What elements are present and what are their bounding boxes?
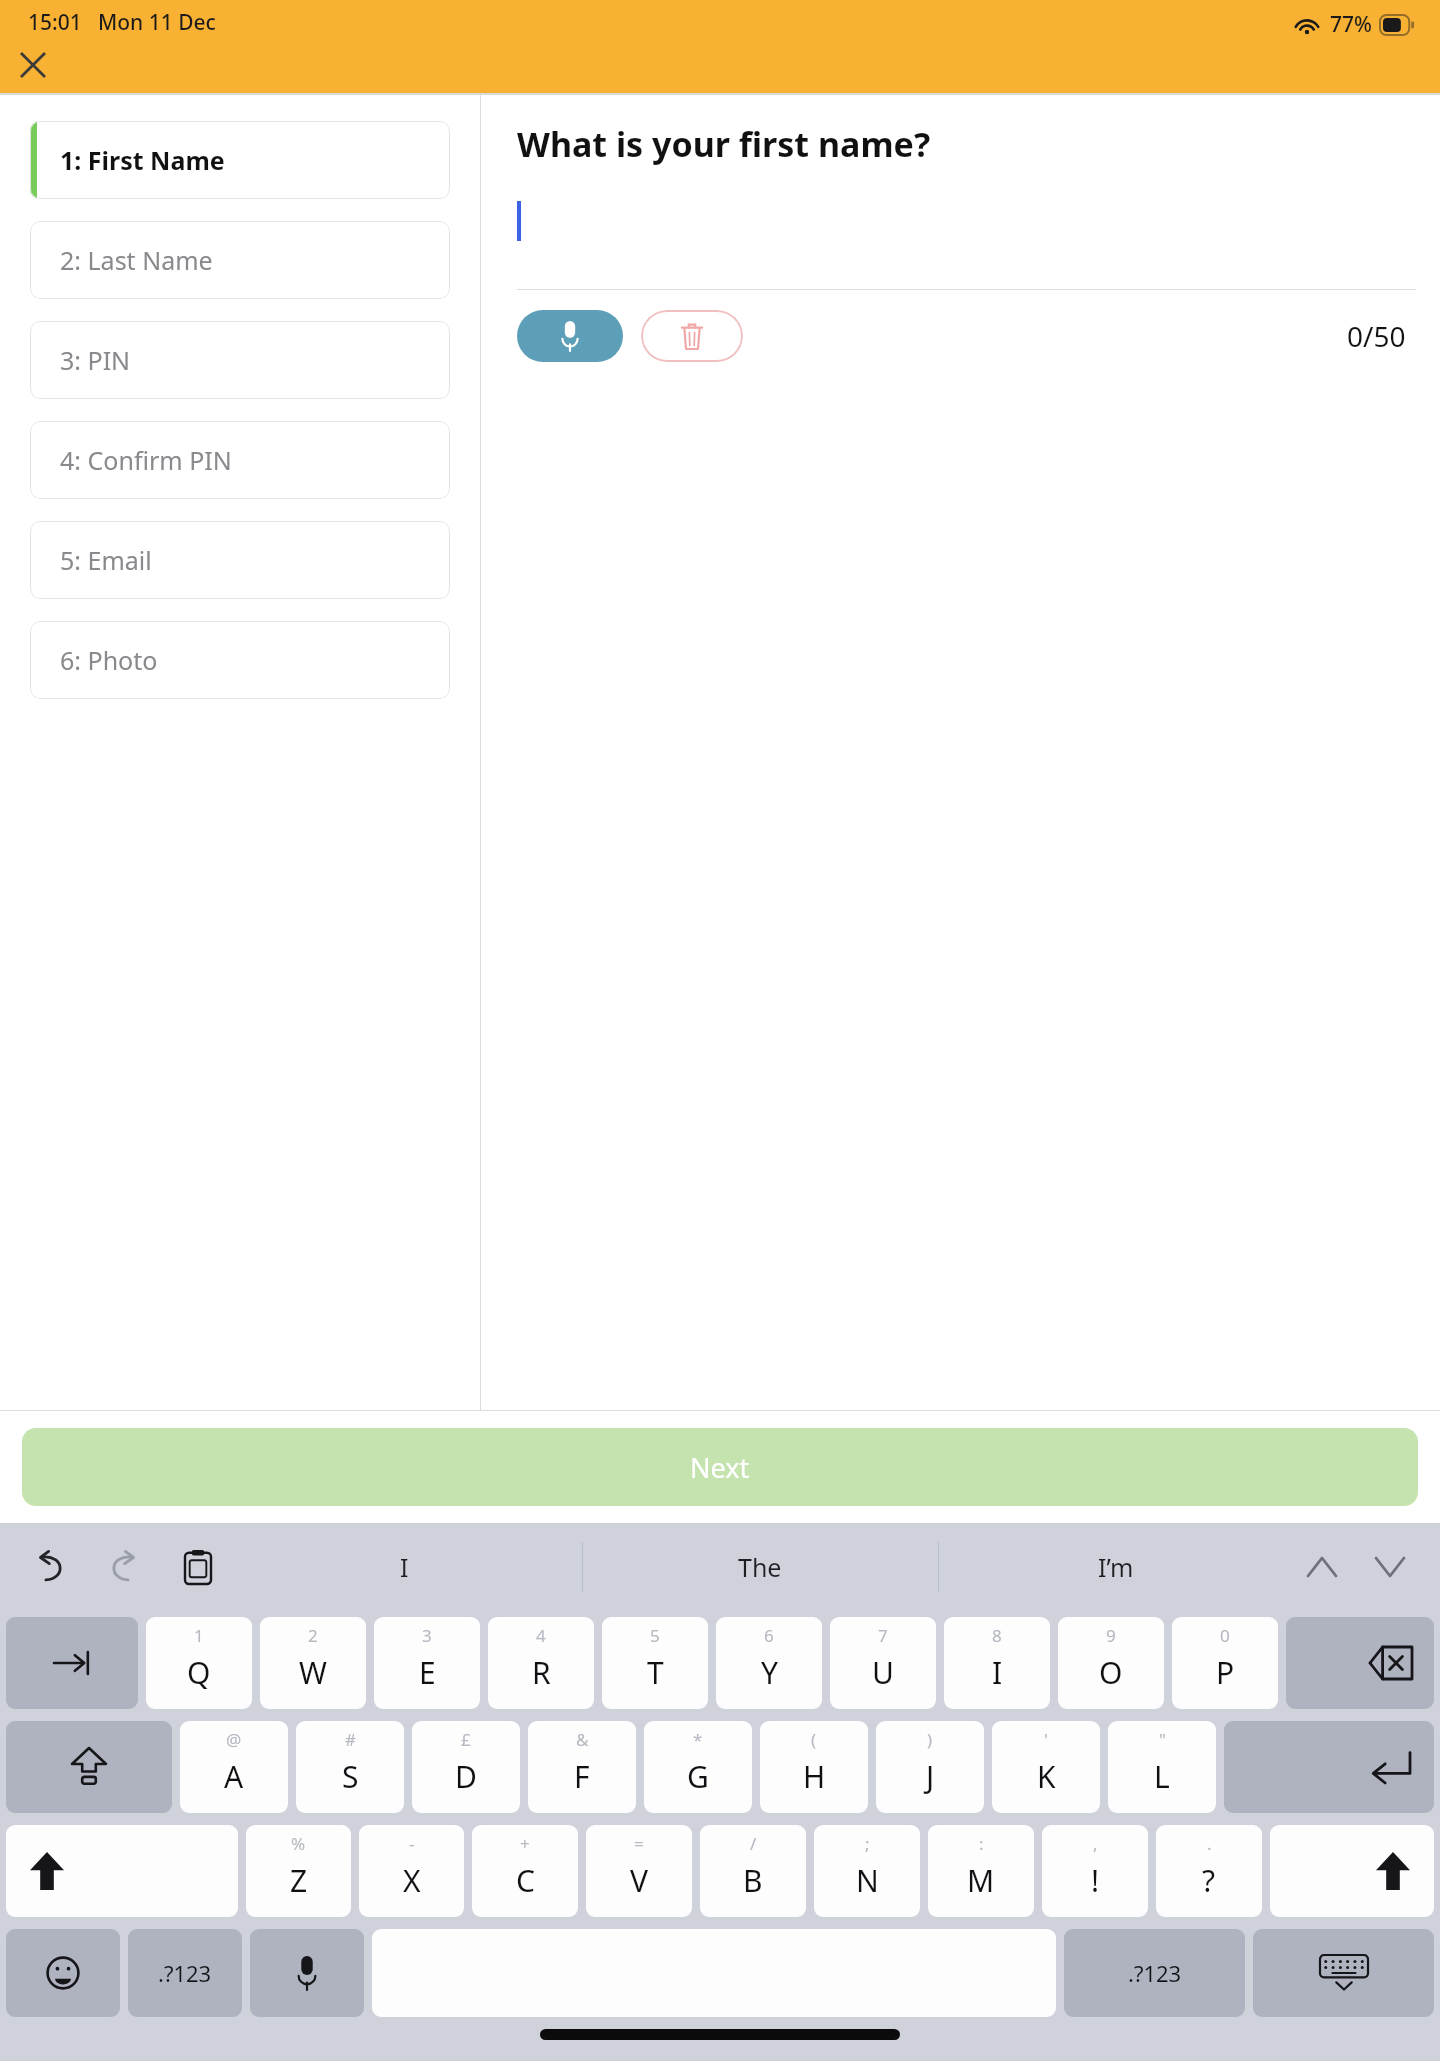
- button[interactable]: :: [928, 1825, 1034, 1917]
- button[interactable]: 8: [944, 1617, 1050, 1709]
- button[interactable]: 1: First Name: [30, 121, 450, 199]
- staticText: L: [1154, 1756, 1170, 1797]
- button[interactable]: Undo: [22, 1539, 78, 1595]
- button[interactable]: Hide keyboard: [1253, 1929, 1434, 2017]
- button[interactable]: Emoji: [6, 1929, 120, 2017]
- button[interactable]: .?123: [1064, 1929, 1245, 2017]
- button[interactable]: ): [876, 1721, 984, 1813]
- button[interactable]: ": [1108, 1721, 1216, 1813]
- staticText: D: [455, 1756, 477, 1797]
- staticText: &: [576, 1728, 589, 1751]
- button[interactable]: 6: [716, 1617, 822, 1709]
- button[interactable]: @: [180, 1721, 288, 1813]
- staticText: -: [409, 1832, 415, 1855]
- staticText: ;: [865, 1832, 870, 1855]
- button[interactable]: #: [296, 1721, 404, 1813]
- button[interactable]: Caps lock: [6, 1721, 172, 1813]
- button[interactable]: 0: [1172, 1617, 1278, 1709]
- button[interactable]: Redo: [96, 1539, 152, 1595]
- button[interactable]: Tab: [6, 1617, 138, 1709]
- staticText: .: [1207, 1832, 1212, 1855]
- button[interactable]: Shift: [1270, 1825, 1434, 1917]
- button[interactable]: 6: Photo: [30, 621, 450, 699]
- button[interactable]: The: [582, 1523, 938, 1611]
- button[interactable]: Delete recording: [641, 310, 743, 362]
- staticText: 8: [992, 1624, 1002, 1647]
- staticText: I: [400, 1550, 409, 1584]
- staticText: O: [1099, 1652, 1123, 1693]
- button[interactable]: =: [586, 1825, 692, 1917]
- button[interactable]: 9: [1058, 1617, 1164, 1709]
- button[interactable]: Record audio: [517, 310, 623, 362]
- button[interactable]: 4: [488, 1617, 594, 1709]
- button[interactable]: 2: Last Name: [30, 221, 450, 299]
- button[interactable]: 2: [260, 1617, 366, 1709]
- button[interactable]: *: [644, 1721, 752, 1813]
- button[interactable]: Backspace: [1286, 1617, 1434, 1709]
- staticText: Z: [290, 1860, 308, 1901]
- staticText: /: [750, 1832, 757, 1855]
- staticText: 3: PIN: [60, 343, 131, 377]
- staticText: .?123: [158, 1958, 212, 1988]
- staticText: 6: Photo: [60, 643, 158, 677]
- button[interactable]: 7: [830, 1617, 936, 1709]
- staticText: Y: [761, 1652, 778, 1693]
- button[interactable]: Next field: [1362, 1539, 1418, 1595]
- staticText: !: [1091, 1860, 1100, 1901]
- button[interactable]: 3: [374, 1617, 480, 1709]
- button[interactable]: I: [226, 1523, 582, 1611]
- button[interactable]: .: [1156, 1825, 1262, 1917]
- staticText: C: [516, 1860, 535, 1901]
- staticText: R: [532, 1652, 551, 1693]
- staticText: 7: [878, 1624, 888, 1647]
- button[interactable]: ;: [814, 1825, 920, 1917]
- button[interactable]: 1: [146, 1617, 252, 1709]
- staticText: I’m: [1098, 1550, 1134, 1584]
- button[interactable]: 4: Confirm PIN: [30, 421, 450, 499]
- button[interactable]: 5: Email: [30, 521, 450, 599]
- button[interactable]: ,: [1042, 1825, 1148, 1917]
- button[interactable]: 3: PIN: [30, 321, 450, 399]
- button[interactable]: Close: [10, 42, 56, 88]
- button[interactable]: 5: [602, 1617, 708, 1709]
- staticText: P: [1216, 1652, 1235, 1693]
- button[interactable]: %: [246, 1825, 351, 1917]
- button[interactable]: Next: [22, 1428, 1418, 1506]
- staticText: =: [634, 1832, 644, 1855]
- button[interactable]: Clipboard: [170, 1539, 226, 1595]
- button[interactable]: £: [412, 1721, 520, 1813]
- staticText: 4: Confirm PIN: [60, 443, 232, 477]
- button[interactable]: /: [700, 1825, 806, 1917]
- staticText: F: [574, 1756, 590, 1797]
- staticText: B: [743, 1860, 763, 1901]
- button[interactable]: Shift: [6, 1825, 238, 1917]
- staticText: The: [738, 1550, 782, 1584]
- staticText: *: [693, 1728, 703, 1751]
- button[interactable]: &: [528, 1721, 636, 1813]
- button[interactable]: (: [760, 1721, 868, 1813]
- button[interactable]: +: [472, 1825, 578, 1917]
- staticText: ,: [1093, 1832, 1098, 1855]
- staticText: U: [872, 1652, 894, 1693]
- staticText: (: [811, 1728, 817, 1751]
- button[interactable]: Previous: [1294, 1539, 1350, 1595]
- button[interactable]: .?123: [128, 1929, 242, 2017]
- staticText: M: [967, 1860, 995, 1901]
- button[interactable]: Enter: [1224, 1721, 1434, 1813]
- staticText: 6: [764, 1624, 774, 1647]
- staticText: ): [927, 1728, 933, 1751]
- staticText: 2: Last Name: [60, 243, 213, 277]
- staticText: T: [647, 1652, 664, 1693]
- staticText: J: [926, 1756, 935, 1797]
- staticText: K: [1037, 1756, 1056, 1797]
- button[interactable]: I’m: [938, 1523, 1294, 1611]
- staticText: #: [345, 1728, 356, 1751]
- staticText: £: [461, 1728, 471, 1751]
- button[interactable]: Voice input: [250, 1929, 364, 2017]
- staticText: Q: [187, 1652, 211, 1693]
- staticText: %: [291, 1832, 306, 1855]
- staticText: ?: [1202, 1860, 1216, 1901]
- button[interactable]: ': [992, 1721, 1100, 1813]
- button[interactable]: -: [359, 1825, 464, 1917]
